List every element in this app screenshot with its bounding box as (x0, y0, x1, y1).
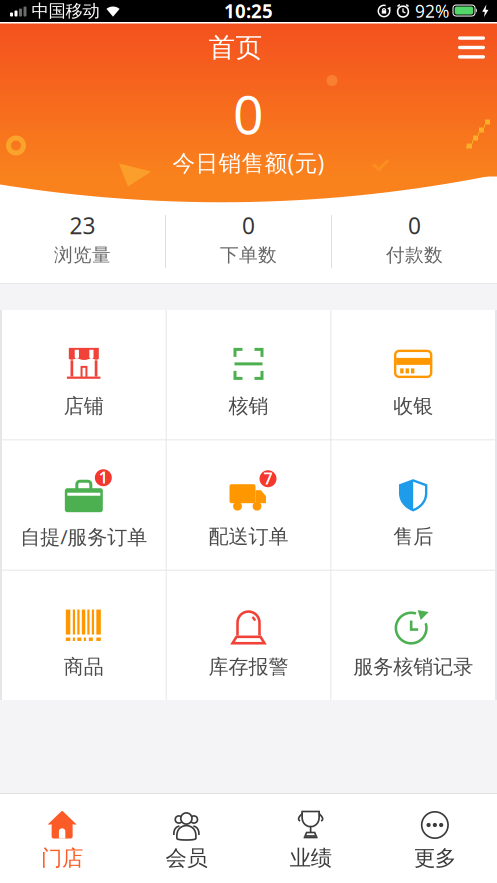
staticText: 0 (408, 210, 421, 240)
staticText: 商品 (64, 655, 104, 679)
button[interactable]: 菜单 (446, 30, 497, 65)
staticText: 会员 (165, 845, 207, 871)
staticText: 业绩 (290, 845, 332, 871)
staticText: 下单数 (220, 243, 277, 266)
button[interactable]: 门店 (0, 810, 124, 871)
staticText: 1 (99, 467, 108, 488)
staticText: 23 (69, 210, 95, 240)
staticText: 店铺 (64, 394, 104, 418)
button[interactable]: 1 (2, 440, 166, 570)
staticText: 自提/服务订单 (20, 523, 147, 550)
staticText: 10:25 (224, 0, 273, 23)
staticText: 中国移动 (31, 0, 99, 22)
button[interactable]: 收银 (331, 310, 495, 439)
staticText: 核销 (228, 394, 268, 418)
button[interactable]: 7 (167, 440, 330, 570)
staticText: 服务核销记录 (353, 655, 473, 679)
staticText: 今日销售额(元) (172, 147, 324, 177)
button[interactable]: 会员 (124, 810, 248, 871)
button[interactable]: 库存报警 (167, 571, 330, 700)
staticText: 92% (415, 0, 449, 22)
button[interactable]: 售后 (331, 440, 495, 570)
staticText: 库存报警 (208, 655, 288, 679)
staticText: 售后 (393, 524, 433, 549)
staticText: 浏览量 (54, 243, 111, 266)
staticText: 收银 (393, 394, 433, 418)
staticText: 更多 (414, 845, 456, 871)
button[interactable]: 核销 (167, 310, 330, 439)
button[interactable]: 商品 (2, 571, 166, 700)
button[interactable]: 店铺 (2, 310, 166, 439)
button[interactable]: 服务核销记录 (331, 571, 495, 700)
staticText: 0 (233, 78, 264, 149)
staticText: 7 (263, 468, 272, 489)
staticText: 付款数 (386, 243, 443, 266)
staticText: 配送订单 (208, 524, 288, 549)
staticText: 首页 (208, 31, 262, 64)
button[interactable]: 更多 (373, 810, 497, 871)
staticText: 门店 (41, 845, 83, 871)
staticText: 0 (242, 210, 255, 240)
button[interactable]: 业绩 (248, 810, 373, 871)
